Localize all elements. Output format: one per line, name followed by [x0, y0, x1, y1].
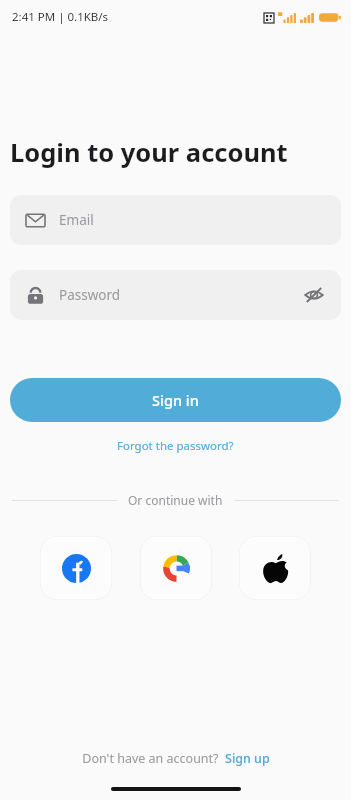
button[interactable]: Sign in — [10, 378, 341, 422]
staticText: Forgot the password? — [117, 438, 234, 454]
staticText: Password — [59, 286, 303, 304]
button[interactable]: Show password — [303, 284, 325, 306]
button[interactable]: Don't have an account? Sign up — [0, 750, 351, 767]
staticText: Email — [59, 211, 325, 229]
button[interactable]: Sign in with Apple — [239, 536, 311, 600]
staticText: Or continue with — [128, 492, 223, 508]
staticText: Login to your account — [10, 135, 343, 170]
button[interactable]: Sign in with Google — [140, 536, 212, 600]
button[interactable]: Email — [10, 195, 341, 245]
button[interactable]: Password — [10, 270, 341, 320]
staticText: Don't have an account? Sign up — [82, 750, 270, 767]
button[interactable]: Sign in with Facebook — [40, 536, 112, 600]
button[interactable]: Forgot the password? — [0, 432, 351, 460]
staticText: 2:41 PM | 0.1KB/s — [12, 9, 109, 25]
staticText: Sign in — [152, 390, 199, 410]
